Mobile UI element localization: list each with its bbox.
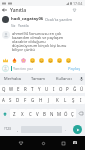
button[interactable]: J [45, 96, 53, 104]
button[interactable]: Options [70, 6, 79, 14]
staticText: U [45, 86, 49, 92]
staticText: C [29, 111, 32, 117]
button[interactable]: Recent apps [56, 136, 70, 150]
button[interactable]: Y [36, 85, 43, 93]
staticText: P [66, 86, 69, 92]
button[interactable]: Emoji [46, 56, 55, 64]
button[interactable]: H [37, 96, 45, 104]
button[interactable]: I [50, 85, 57, 93]
button[interactable]: A [0, 96, 7, 104]
button[interactable]: Paylaş [66, 65, 83, 72]
button[interactable]: Shift [0, 109, 10, 118]
button[interactable]: T [29, 85, 36, 93]
staticText: Kullanıcı [56, 76, 72, 81]
button[interactable]: Ü [78, 85, 85, 93]
button[interactable]: G [29, 96, 37, 104]
button[interactable]: Ç [69, 109, 76, 118]
button[interactable]: C [26, 109, 34, 118]
staticText: ?123 [4, 127, 11, 131]
button[interactable]: N [48, 109, 55, 118]
button[interactable]: Period [62, 124, 69, 134]
button[interactable]: P [64, 85, 71, 93]
button[interactable]: F [21, 96, 29, 104]
button[interactable]: Ğ [71, 85, 78, 93]
staticText: F [24, 97, 27, 103]
staticText: G [31, 97, 35, 103]
button[interactable]: Emoji [55, 56, 64, 64]
button[interactable]: Emoji [64, 56, 73, 64]
staticText: R [24, 86, 27, 92]
button[interactable]: Ş [69, 96, 77, 104]
staticText: Y [38, 86, 41, 92]
button[interactable]: D [14, 96, 21, 104]
staticText: Ç [71, 111, 74, 117]
staticText: J [48, 97, 50, 103]
staticText: , [17, 127, 19, 132]
staticText: W [9, 86, 14, 92]
button[interactable]: M [55, 109, 62, 118]
button[interactable]: Backspace [76, 109, 85, 118]
staticText: Q [2, 86, 6, 92]
staticText: B [43, 111, 46, 117]
button[interactable]: R [22, 85, 29, 93]
button[interactable]: Back [0, 6, 9, 14]
staticText: N [50, 111, 54, 117]
staticText: ahmet94 Sonuncusu en çok kazandım olmak … [12, 31, 69, 53]
staticText: Ğ [73, 86, 77, 92]
staticText: H [39, 97, 43, 103]
staticText: L [64, 97, 67, 103]
button[interactable]: Merhaba [0, 73, 25, 84]
button[interactable]: I [77, 96, 85, 104]
staticText: Ocak'ta yazdım [45, 17, 73, 22]
staticText: Merhaba [4, 76, 21, 81]
button[interactable]: Emoji [19, 56, 28, 64]
button[interactable]: O [57, 85, 64, 93]
staticText: hadi_cagatay06 [11, 16, 44, 22]
staticText: D [16, 97, 20, 103]
button[interactable]: Voice input [77, 73, 85, 84]
staticText: I [53, 86, 55, 92]
button[interactable]: Comma [14, 124, 21, 134]
button[interactable]: Ö [62, 109, 69, 118]
button[interactable]: Emoji [28, 56, 37, 64]
staticText: Siz [11, 23, 16, 28]
staticText: V [36, 111, 39, 117]
button[interactable]: X [18, 109, 26, 118]
staticText: X [21, 111, 24, 117]
staticText: Yanıtla [18, 23, 29, 28]
staticText: I [80, 97, 82, 103]
button[interactable]: B [41, 109, 48, 118]
button[interactable]: Z [10, 109, 18, 118]
staticText: K [56, 97, 59, 103]
button[interactable]: S [7, 96, 14, 104]
button[interactable]: Send [73, 125, 82, 134]
button[interactable]: U [43, 85, 50, 93]
button[interactable]: E [15, 85, 22, 93]
button[interactable]: Kullanıcı [51, 73, 77, 84]
staticText: Ş [72, 97, 75, 103]
button[interactable]: Tamam [25, 73, 51, 84]
staticText: Z [13, 111, 16, 117]
staticText: S [9, 97, 12, 103]
button[interactable]: Emoji [1, 56, 10, 64]
staticText: 17:04 [73, 1, 83, 6]
staticText: Ü [80, 86, 84, 92]
button[interactable]: L [61, 96, 69, 104]
staticText: Yanıtla [10, 7, 27, 14]
button[interactable]: K [53, 96, 61, 104]
button[interactable]: W [8, 85, 15, 93]
staticText: Ö [64, 111, 68, 117]
staticText: O [59, 86, 63, 92]
button[interactable]: Q [0, 85, 8, 93]
button[interactable]: Emoji [10, 56, 19, 64]
staticText: T [31, 86, 34, 92]
button[interactable]: Change keyboard [69, 136, 81, 148]
button[interactable]: Back [14, 136, 28, 150]
button[interactable]: ?123 [0, 124, 14, 134]
button[interactable]: Emoji [37, 56, 46, 64]
staticText: Paylaş [68, 66, 81, 71]
button[interactable]: Home [36, 136, 50, 150]
button[interactable]: V [34, 109, 41, 118]
staticText: Yanıtını yaz [13, 66, 33, 71]
